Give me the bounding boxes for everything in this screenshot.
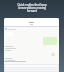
- staticText: Quick replies that keep conversations mo…: [17, 3, 47, 12]
